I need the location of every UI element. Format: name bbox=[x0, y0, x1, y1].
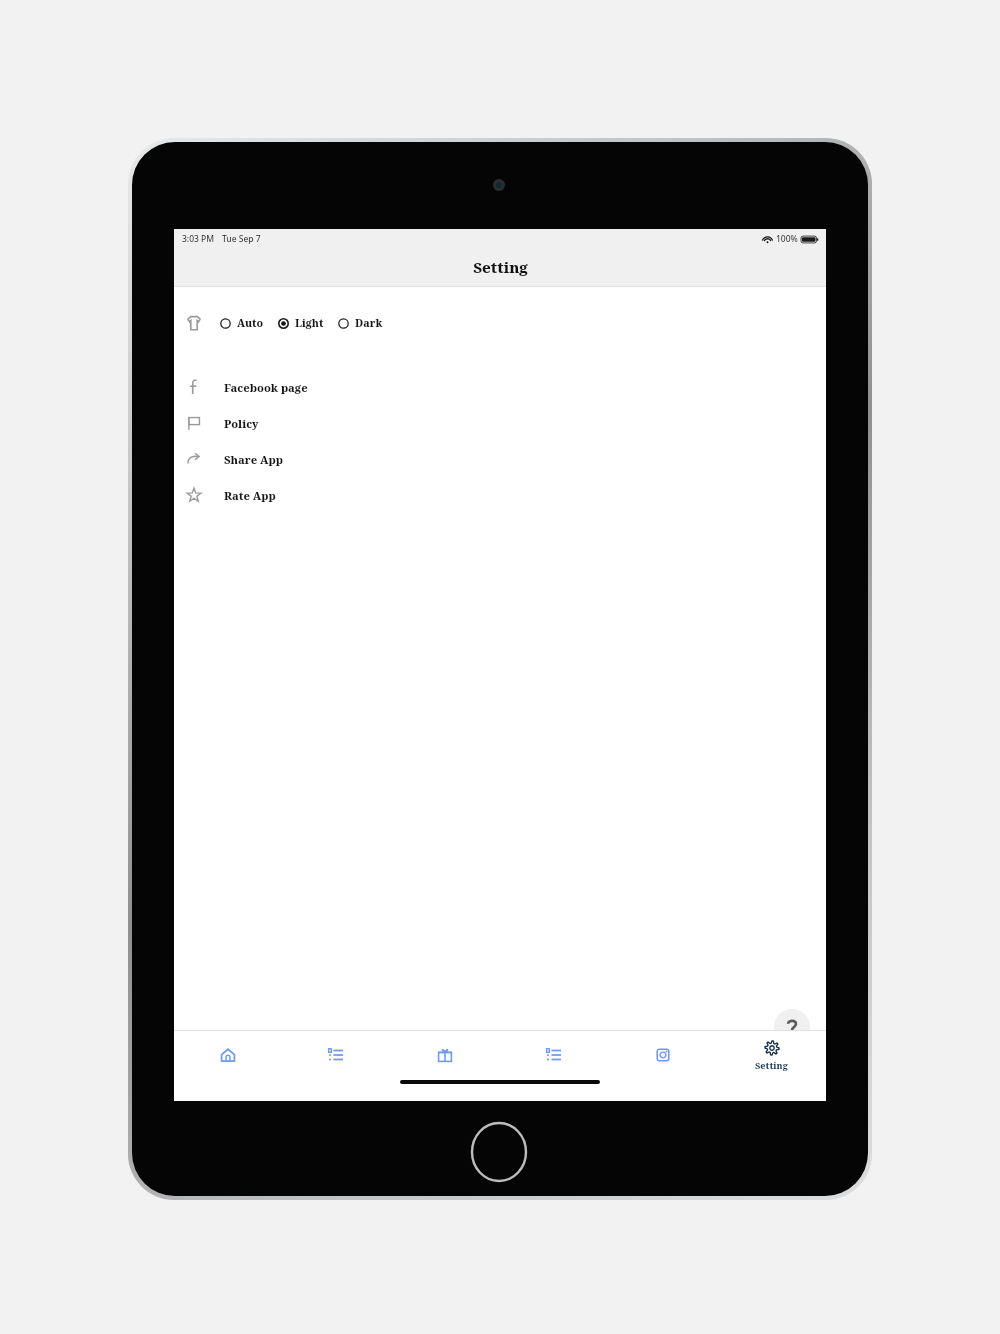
button[interactable]: Setting bbox=[717, 1031, 826, 1079]
staticText: Policy bbox=[224, 416, 259, 431]
staticText: Auto bbox=[237, 316, 264, 330]
button[interactable]: Dark bbox=[338, 314, 383, 332]
staticText: Tue Sep 7 bbox=[222, 233, 261, 245]
staticText: Facebook page bbox=[224, 380, 308, 395]
staticText: 100% bbox=[776, 233, 798, 245]
button[interactable]: List bbox=[282, 1031, 390, 1079]
button[interactable]: Help bbox=[774, 1009, 810, 1045]
staticText: Rate App bbox=[224, 488, 276, 503]
button[interactable]: Gifts bbox=[390, 1031, 499, 1079]
button[interactable]: Policy bbox=[174, 405, 826, 441]
button[interactable]: Share App bbox=[174, 441, 826, 477]
staticText: Setting bbox=[473, 257, 528, 277]
staticText: Dark bbox=[355, 316, 383, 330]
button[interactable]: Orders bbox=[499, 1031, 608, 1079]
staticText: Setting bbox=[755, 1059, 788, 1071]
staticText: Light bbox=[295, 316, 324, 330]
button[interactable]: Rate App bbox=[174, 477, 826, 513]
button[interactable]: Facebook page bbox=[174, 369, 826, 405]
button[interactable]: Auto bbox=[220, 314, 264, 332]
button[interactable]: Gallery bbox=[608, 1031, 717, 1079]
button[interactable]: Light bbox=[278, 314, 324, 332]
staticText: 3:03 PM bbox=[182, 233, 215, 245]
staticText: Share App bbox=[224, 452, 284, 467]
button[interactable]: Home bbox=[174, 1031, 282, 1079]
